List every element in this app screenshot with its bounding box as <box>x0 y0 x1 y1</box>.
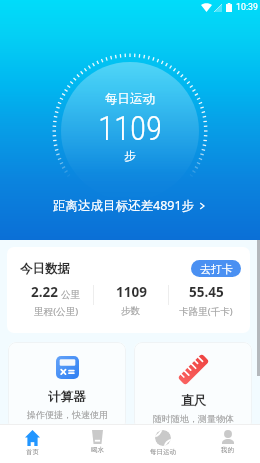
staticText: 步数 <box>121 305 141 317</box>
button[interactable]: Daily exercise <box>130 425 195 463</box>
staticText: 里程(公里) <box>34 305 79 318</box>
staticText: 去打卡 <box>200 262 233 276</box>
button[interactable]: Profile <box>195 425 260 463</box>
staticText: 直尺 <box>181 393 206 409</box>
staticText: 喝水 <box>91 446 104 454</box>
staticText: 我的 <box>221 446 234 454</box>
staticText: 1109 <box>116 283 147 301</box>
staticText: 随时随地，测量物体 <box>153 413 234 424</box>
staticText: 1109 <box>98 109 163 148</box>
button[interactable]: Drink water <box>65 425 130 463</box>
staticText: 卡路里(千卡) <box>179 305 233 318</box>
button[interactable]: 直尺 <box>134 342 252 430</box>
staticText: 步 <box>124 149 136 163</box>
staticText: 10:39 <box>236 2 258 12</box>
staticText: 计算器 <box>48 389 86 405</box>
button[interactable]: Home <box>0 425 65 463</box>
staticText: 每日运动 <box>105 91 155 107</box>
staticText: 公里 <box>61 289 81 301</box>
button[interactable]: 去打卡 <box>191 260 241 277</box>
staticText: 距离达成目标还差4891步 <box>53 197 195 214</box>
staticText: 55.45 <box>189 283 224 301</box>
staticText: 首页 <box>26 448 39 456</box>
staticText: 今日数据 <box>20 261 70 277</box>
button[interactable]: 距离达成目标还差4891步 <box>47 194 213 217</box>
staticText: 操作便捷，快速使用 <box>27 409 108 420</box>
staticText: 2.22 <box>31 283 58 301</box>
button[interactable]: 计算器 <box>8 342 126 430</box>
staticText: 每日运动 <box>150 448 176 456</box>
